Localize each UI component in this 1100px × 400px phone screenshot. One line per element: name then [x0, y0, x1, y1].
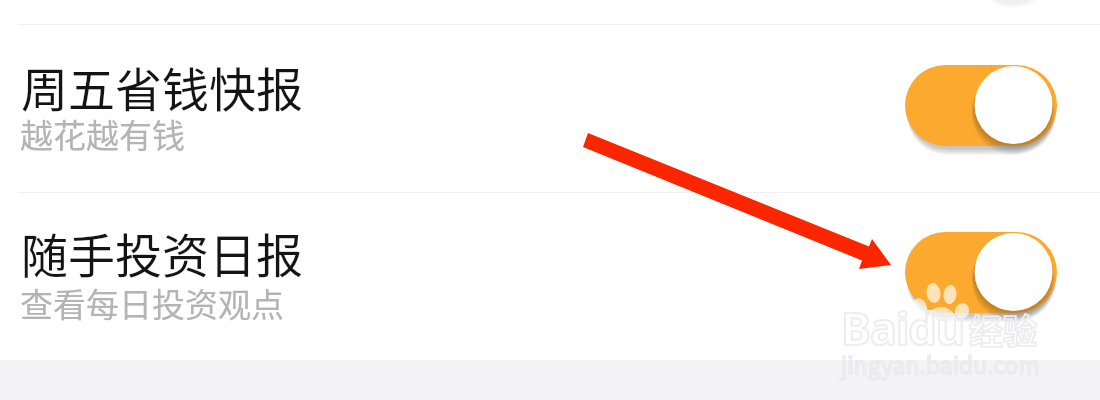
button[interactable]: Toggle switch on — [905, 65, 1057, 155]
staticText: Baidu — [841, 297, 965, 358]
button[interactable]: 随手投资日报 — [0, 191, 1100, 358]
staticText: 随手投资日报 — [21, 218, 303, 286]
staticText: 周五省钱快报 — [21, 52, 303, 120]
staticText: 越花越有钱 — [20, 110, 185, 158]
button[interactable]: Toggle switch on — [905, 232, 1057, 322]
staticText: 查看每日投资观点 — [20, 279, 284, 327]
button[interactable]: 周五省钱快报 — [0, 25, 1100, 192]
staticText: 经验 — [969, 305, 1037, 354]
staticText: jingyan.baidu.com — [841, 347, 1040, 380]
